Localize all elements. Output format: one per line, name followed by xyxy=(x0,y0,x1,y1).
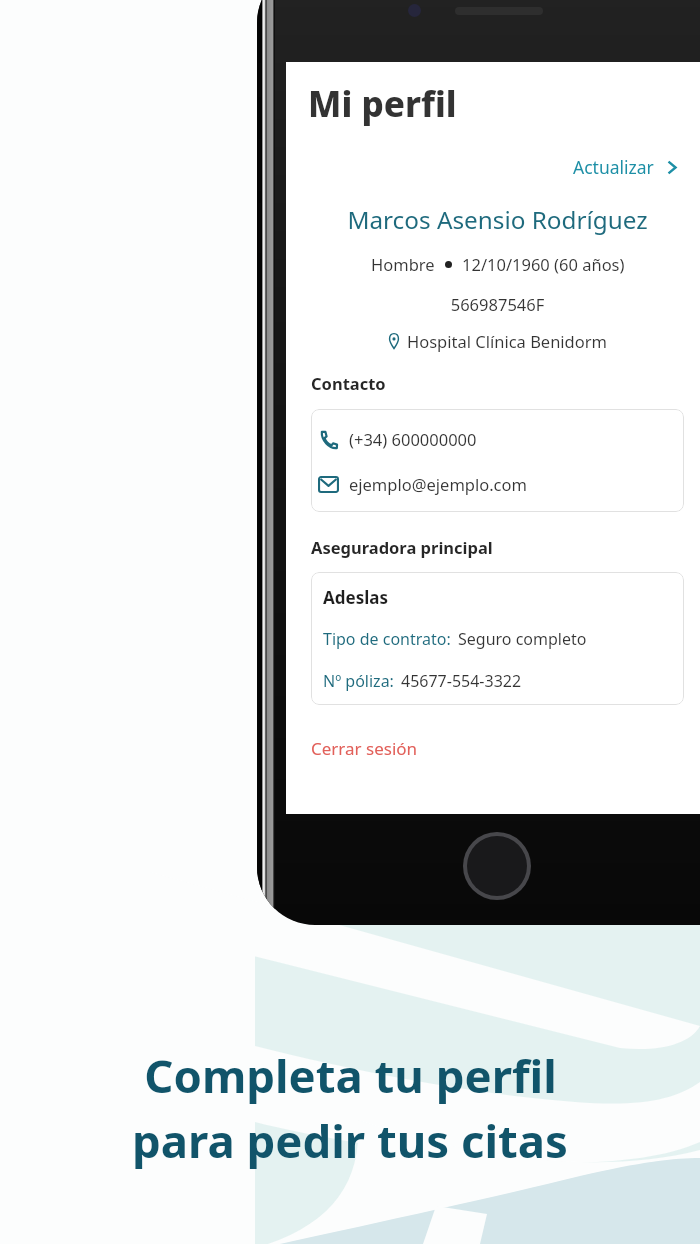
staticText: Tipo de contrato: xyxy=(323,628,451,650)
staticText: para pedir tus citas xyxy=(132,1109,568,1171)
staticText: Contacto xyxy=(311,372,386,394)
button[interactable]: Cerrar sesión xyxy=(311,737,418,760)
staticText: 12/10/1960 (60 años) xyxy=(462,253,625,275)
staticText: ejemplo@ejemplo.com xyxy=(349,473,527,495)
button[interactable]: (+34) 600000000 xyxy=(319,428,477,450)
staticText: Hombre xyxy=(371,253,435,275)
staticText: Aseguradora principal xyxy=(311,536,493,558)
staticText: Adeslas xyxy=(323,586,388,609)
staticText: Completa tu perfil xyxy=(144,1044,557,1106)
staticText: Marcos Asensio Rodríguez xyxy=(286,203,700,236)
staticText: 566987546F xyxy=(286,293,700,315)
button[interactable]: ejemplo@ejemplo.com xyxy=(318,473,527,495)
staticText: (+34) 600000000 xyxy=(349,428,477,450)
staticText: Nº póliza: xyxy=(323,670,394,692)
button[interactable]: Actualizar xyxy=(286,155,677,179)
staticText: Mi perfil xyxy=(308,80,457,128)
staticText: Actualizar xyxy=(573,155,654,179)
staticText: Hospital Clínica Benidorm xyxy=(407,330,607,352)
staticText: 45677-554-3322 xyxy=(401,670,522,692)
staticText: Seguro completo xyxy=(458,628,587,650)
